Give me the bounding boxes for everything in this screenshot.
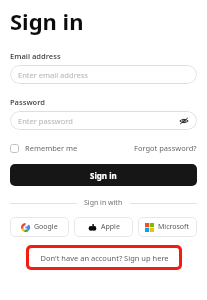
staticText: Microsoft	[158, 222, 190, 232]
staticText: Password	[10, 97, 46, 107]
staticText: Enter password	[18, 116, 73, 126]
staticText: Enter email address	[18, 70, 88, 80]
button[interactable]: Enter email address	[10, 65, 197, 84]
staticText: Sign in	[10, 6, 84, 36]
staticText: Sign in	[90, 170, 117, 181]
staticText: Forgot password?	[134, 143, 197, 153]
staticText: Email address	[10, 51, 61, 61]
staticText: Apple	[101, 222, 120, 232]
staticText: Remember me	[25, 143, 78, 153]
button[interactable]: Microsoft	[138, 217, 197, 237]
button[interactable]: Forgot password?	[134, 143, 197, 153]
button[interactable]: Enter password	[10, 111, 197, 130]
button[interactable]: Show password	[178, 115, 189, 126]
button[interactable]: Apple	[74, 217, 133, 237]
button[interactable]: Don't have an account? Sign up here	[26, 245, 182, 270]
button[interactable]: Google	[10, 217, 69, 237]
staticText: Google	[34, 222, 58, 232]
staticText: Don't have an account? Sign up here	[40, 253, 169, 263]
button[interactable]: Sign in	[10, 164, 197, 186]
button[interactable]: Remember me	[10, 143, 78, 153]
staticText: Sign in with	[84, 198, 123, 208]
